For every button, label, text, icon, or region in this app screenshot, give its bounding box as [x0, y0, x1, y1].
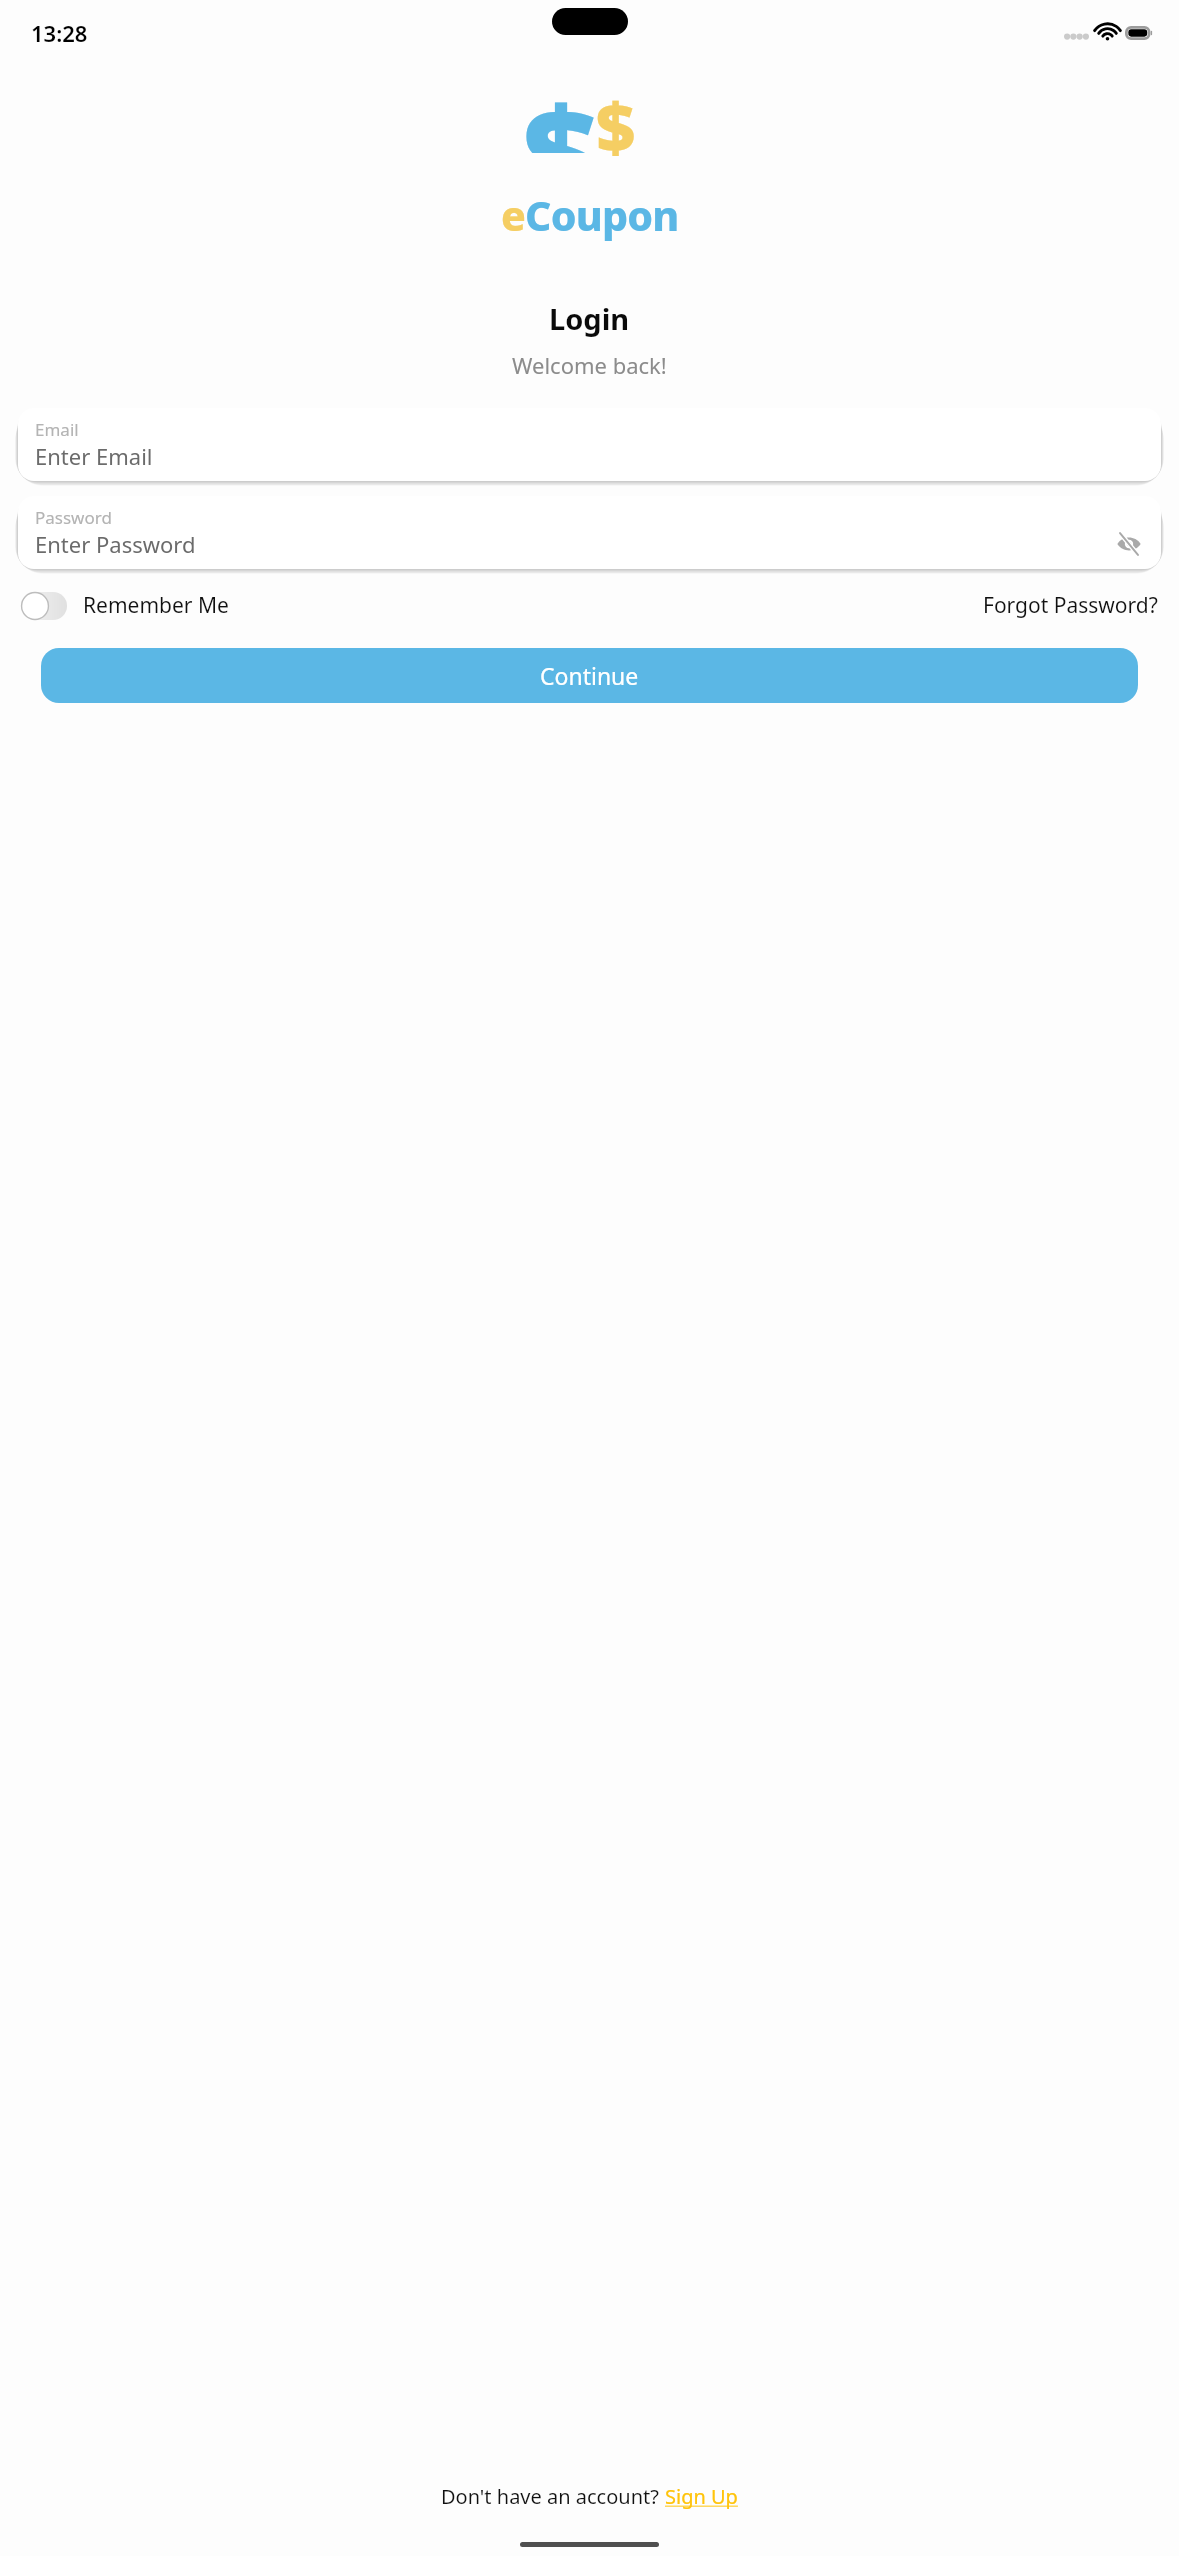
staticText: Login	[549, 299, 630, 338]
staticText: Remember Me	[83, 591, 229, 620]
staticText: Password	[35, 506, 112, 529]
staticText: 13:28	[31, 18, 88, 48]
staticText: Enter Password	[35, 529, 196, 559]
staticText: Forgot Password?	[983, 591, 1158, 620]
button[interactable]: Forgot Password?	[983, 591, 1158, 620]
staticText: Sign Up	[665, 2483, 738, 2510]
button[interactable]: Continue	[41, 648, 1138, 703]
staticText: Email	[35, 418, 79, 441]
button[interactable]: Show password	[1114, 529, 1144, 559]
staticText: Continue	[540, 660, 639, 691]
staticText: $	[596, 79, 636, 171]
button[interactable]: Sign Up	[665, 2483, 738, 2510]
staticText: eCoupon	[501, 187, 679, 243]
button[interactable]: Password	[18, 496, 1161, 569]
staticText: Enter Email	[35, 441, 153, 471]
staticText: Welcome back!	[512, 350, 667, 380]
button[interactable]: Email	[18, 408, 1161, 481]
button[interactable]: Remember Me	[21, 591, 229, 620]
staticText: $	[523, 61, 600, 153]
staticText: Don't have an account?	[441, 2483, 665, 2510]
